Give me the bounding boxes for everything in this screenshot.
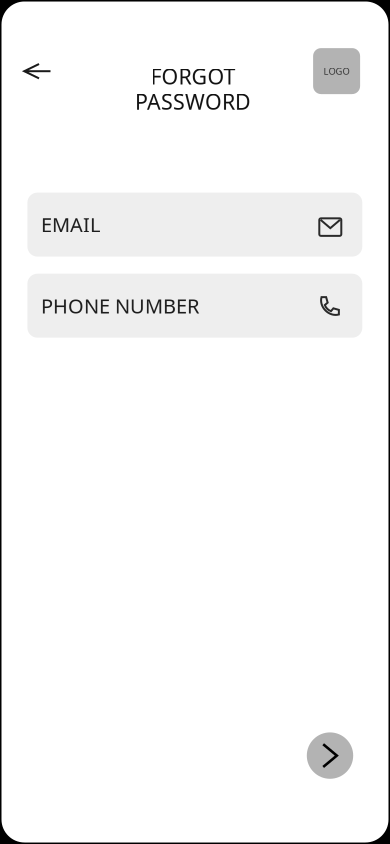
button[interactable]: Logo bbox=[313, 48, 360, 94]
staticText: PASSWORD bbox=[135, 87, 251, 116]
staticText: PHONE NUMBER bbox=[41, 292, 199, 319]
button[interactable]: Continue bbox=[307, 732, 353, 779]
button[interactable]: EMAIL bbox=[27, 193, 362, 257]
staticText: EMAIL bbox=[41, 211, 100, 238]
staticText: FORGOT bbox=[150, 62, 235, 90]
staticText: LOGO bbox=[324, 65, 350, 77]
button[interactable]: Back bbox=[13, 53, 61, 89]
button[interactable]: PHONE NUMBER bbox=[27, 274, 362, 338]
